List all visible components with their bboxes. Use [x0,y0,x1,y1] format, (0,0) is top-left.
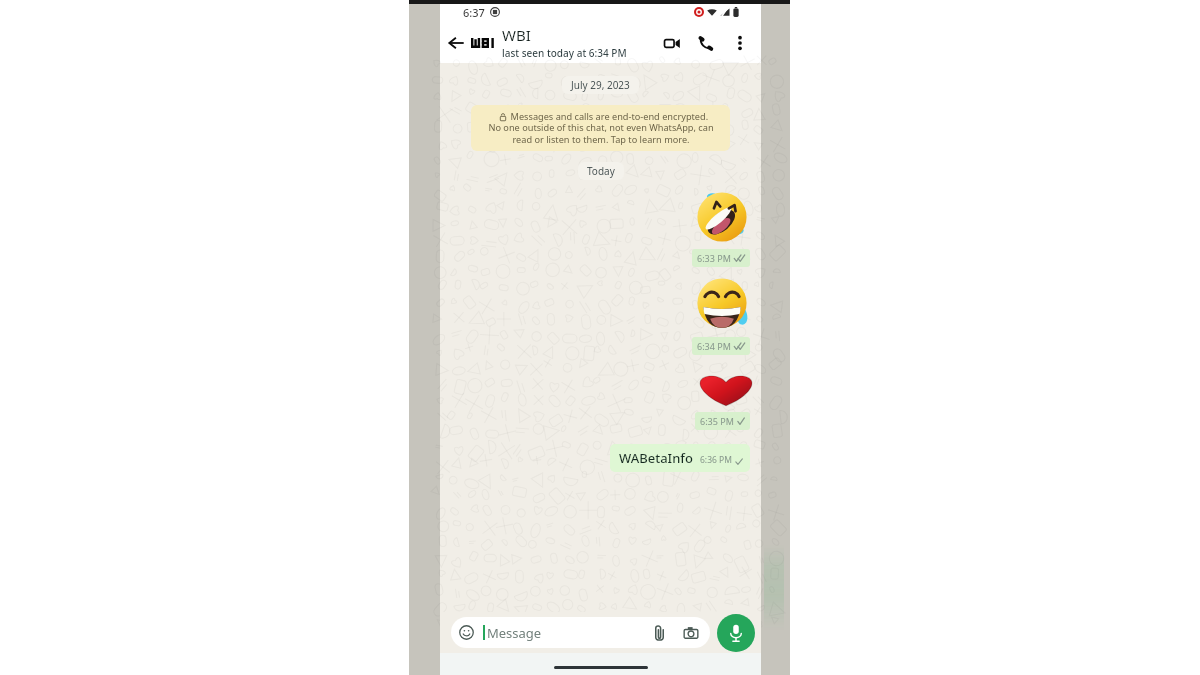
staticText: July 29, 2023 [571,78,630,92]
button[interactable]: Attach [650,624,668,642]
staticText: last seen today at 6:34 PM [502,46,627,60]
button[interactable]: Messages and calls are end-to-end encryp… [471,105,730,151]
button[interactable]: Voice message [717,614,755,652]
button[interactable] [695,276,749,330]
button[interactable]: Voice call [692,29,720,57]
button[interactable]: WBI [502,25,657,60]
button[interactable]: Message [451,617,710,648]
staticText: 6:37 [463,5,485,20]
button[interactable] [468,28,497,57]
button[interactable]: Camera [682,624,700,642]
staticText: 6:35 PM [700,415,734,427]
staticText: WBI [502,25,531,45]
button[interactable] [699,372,753,406]
staticText: 6:34 PM [697,340,731,352]
button[interactable]: WABetaInfo [610,444,750,472]
staticText: WABetaInfo [619,449,693,467]
button[interactable] [695,190,749,244]
staticText: Message [487,624,542,642]
button[interactable]: Video call [657,29,685,57]
button[interactable]: More options [728,31,752,55]
staticText: 6:36 PM [700,454,732,466]
staticText: Today [587,164,615,178]
button[interactable]: Back [444,31,468,55]
staticText: 6:33 PM [697,252,731,264]
staticText: Messages and calls are end-to-end encryp… [488,110,714,146]
